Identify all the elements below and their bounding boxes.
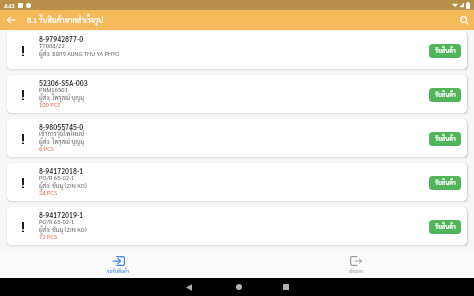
button[interactable]: รับสินค้า (429, 220, 461, 234)
staticText: รับสินค้า (435, 91, 456, 99)
staticText: 8.1 รับสินค้าจากสำเร็จรูป (27, 15, 104, 25)
staticText: PO/R 65-02-1 (39, 174, 75, 182)
staticText: รับสินค้า (435, 47, 456, 55)
button[interactable]: 8-94172019-1 (7, 207, 467, 245)
button[interactable]: Search (454, 10, 474, 30)
button[interactable]: ส่งออก (237, 251, 474, 278)
staticText: รอรับสินค้า (107, 268, 130, 274)
staticText: 6 PCS (39, 145, 54, 153)
staticText: 4:43 (4, 2, 15, 9)
button[interactable]: Back (0, 10, 21, 30)
staticText: 8-94172019-1 (39, 211, 84, 220)
staticText: PO/R 65-02-1 (39, 218, 75, 226)
button[interactable]: 8-94172018-1 (7, 163, 467, 201)
staticText: 8-98055745-0 (39, 123, 84, 132)
button[interactable]: รับสินค้า (429, 176, 461, 190)
staticText: 52306-S5A-003 (39, 79, 88, 88)
button[interactable]: 8-98055745-0 (7, 119, 467, 157)
staticText: TT004/22 (39, 42, 65, 50)
staticText: 8-94172018-1 (39, 167, 84, 176)
staticText: ผู้ส่ง: ออกจ AUNG THU YA PHYO (39, 50, 120, 58)
staticText: 72 PCS (39, 233, 58, 241)
staticText: PNM16501 (39, 86, 68, 94)
staticText: 24 PCS (39, 189, 58, 197)
button[interactable]: รับสินค้า (429, 132, 461, 146)
button[interactable]: รับสินค้า (429, 44, 461, 58)
staticText: เช้าการวุ่นไพโหมป (39, 130, 84, 138)
staticText: ส่งออก (349, 268, 363, 274)
staticText: 100 PCS (39, 101, 61, 109)
button[interactable]: 8-97942877-0 (7, 31, 467, 69)
staticText: ผู้ส่ง: ซันมุ (ZIN KO) (39, 182, 87, 190)
button[interactable]: 52306-S5A-003 (7, 75, 467, 113)
staticText: ผู้ส่ง: ไพรุสณ์ บุญมุ (39, 94, 84, 102)
staticText: ผู้ส่ง: ซันมุ (ZIN KO) (39, 226, 87, 234)
staticText: รับสินค้า (435, 179, 456, 187)
staticText: 8-97942877-0 (39, 35, 84, 44)
staticText: รับสินค้า (435, 223, 456, 231)
button[interactable]: รับสินค้า (429, 88, 461, 102)
button[interactable]: รอรับสินค้า (0, 251, 237, 278)
staticText: ผู้ส่ง: ไพรุสณ์ บุญมุ (39, 138, 84, 146)
staticText: รับสินค้า (435, 135, 456, 143)
